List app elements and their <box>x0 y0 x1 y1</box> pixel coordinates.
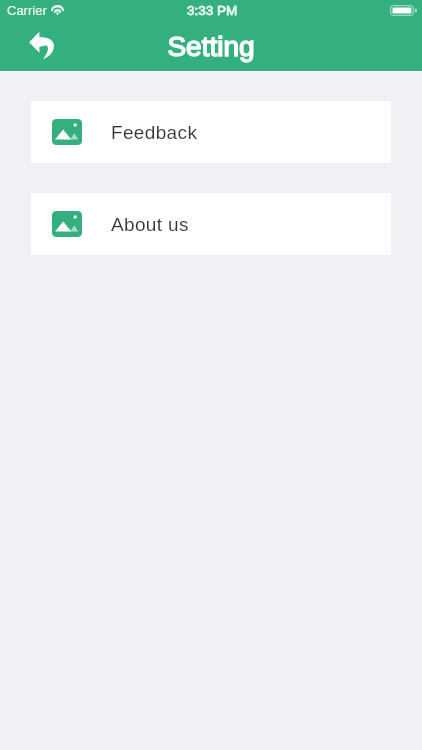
staticText: 3:33 PM <box>187 3 238 18</box>
staticText: 3:33 PM <box>187 3 238 18</box>
staticText: Feedback <box>111 122 198 143</box>
button[interactable]: Back <box>6 16 78 71</box>
staticText: Setting <box>0 31 422 62</box>
button[interactable]: Feedback <box>31 101 391 163</box>
button[interactable]: About us <box>31 193 391 255</box>
staticText: Carrier <box>7 3 47 18</box>
staticText: About us <box>111 214 189 235</box>
staticText: Setting <box>0 31 422 62</box>
